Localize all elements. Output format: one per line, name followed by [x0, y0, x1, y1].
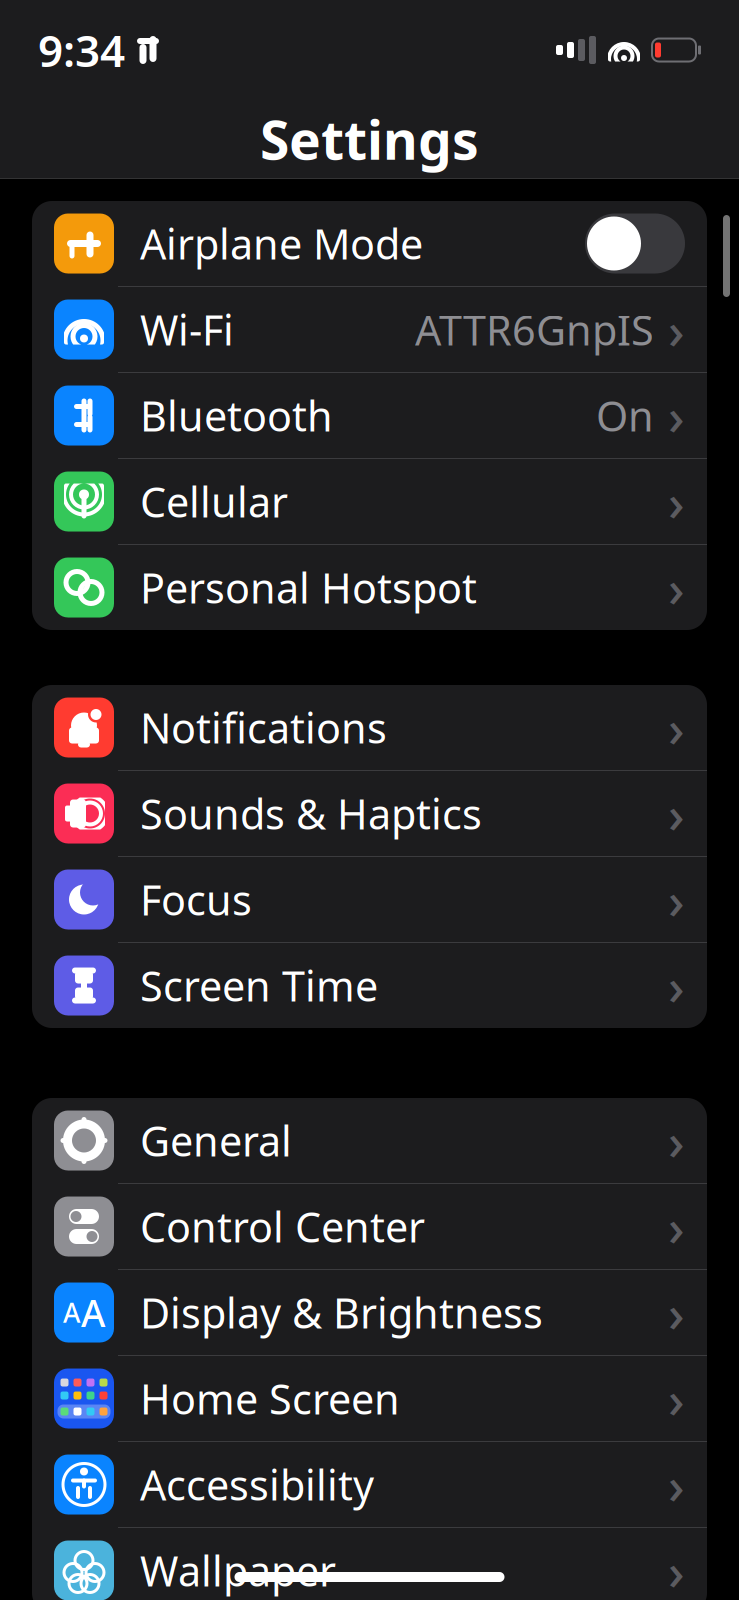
- button[interactable]: Wallpaper: [32, 1528, 707, 1600]
- staticText: Bluetooth: [140, 388, 333, 443]
- staticText: Home Screen: [140, 1371, 400, 1426]
- staticText: ›: [668, 952, 685, 1019]
- button[interactable]: Control Center: [32, 1184, 707, 1269]
- staticText: Focus: [140, 872, 252, 927]
- button[interactable]: Sounds & Haptics: [32, 771, 707, 856]
- staticText: Control Center: [140, 1199, 425, 1254]
- staticText: Notifications: [140, 700, 387, 755]
- staticText: ›: [668, 1279, 685, 1346]
- staticText: Personal Hotspot: [140, 560, 477, 615]
- staticText: Display & Brightness: [140, 1285, 543, 1340]
- staticText: A: [81, 1288, 105, 1337]
- staticText: Airplane Mode: [140, 216, 423, 271]
- button[interactable]: Personal Hotspot: [32, 545, 707, 630]
- staticText: ›: [668, 382, 685, 449]
- staticText: ›: [668, 554, 685, 621]
- staticText: Sounds & Haptics: [140, 786, 482, 841]
- button[interactable]: Airplane Mode: [32, 201, 707, 286]
- staticText: ›: [668, 1451, 685, 1518]
- button[interactable]: A: [32, 1270, 707, 1355]
- staticText: Accessibility: [140, 1457, 374, 1512]
- staticText: A: [63, 1295, 80, 1330]
- staticText: Screen Time: [140, 958, 378, 1013]
- staticText: 9:34: [38, 21, 125, 79]
- button[interactable]: Screen Time: [32, 943, 707, 1028]
- button[interactable]: Cellular: [32, 459, 707, 544]
- staticText: ›: [668, 468, 685, 535]
- staticText: Wi-Fi: [140, 302, 234, 357]
- staticText: ›: [668, 780, 685, 847]
- button[interactable]: Focus: [32, 857, 707, 942]
- staticText: ›: [668, 1537, 685, 1600]
- staticText: ›: [668, 1107, 685, 1174]
- staticText: On: [596, 388, 654, 443]
- staticText: ATTR6GnpIS: [415, 302, 654, 357]
- staticText: Settings: [260, 104, 479, 174]
- staticText: ›: [668, 1365, 685, 1432]
- staticText: ›: [668, 694, 685, 761]
- button[interactable]: Wi-Fi: [32, 287, 707, 372]
- staticText: ›: [668, 1193, 685, 1260]
- button[interactable]: Bluetooth: [32, 373, 707, 458]
- button[interactable]: Home Screen: [32, 1356, 707, 1441]
- staticText: ›: [668, 866, 685, 933]
- staticText: General: [140, 1113, 292, 1168]
- button[interactable]: General: [32, 1098, 707, 1183]
- staticText: ›: [668, 296, 685, 363]
- button[interactable]: Accessibility: [32, 1442, 707, 1527]
- staticText: Wallpaper: [140, 1543, 336, 1598]
- button[interactable]: Notifications: [32, 685, 707, 770]
- staticText: Cellular: [140, 474, 288, 529]
